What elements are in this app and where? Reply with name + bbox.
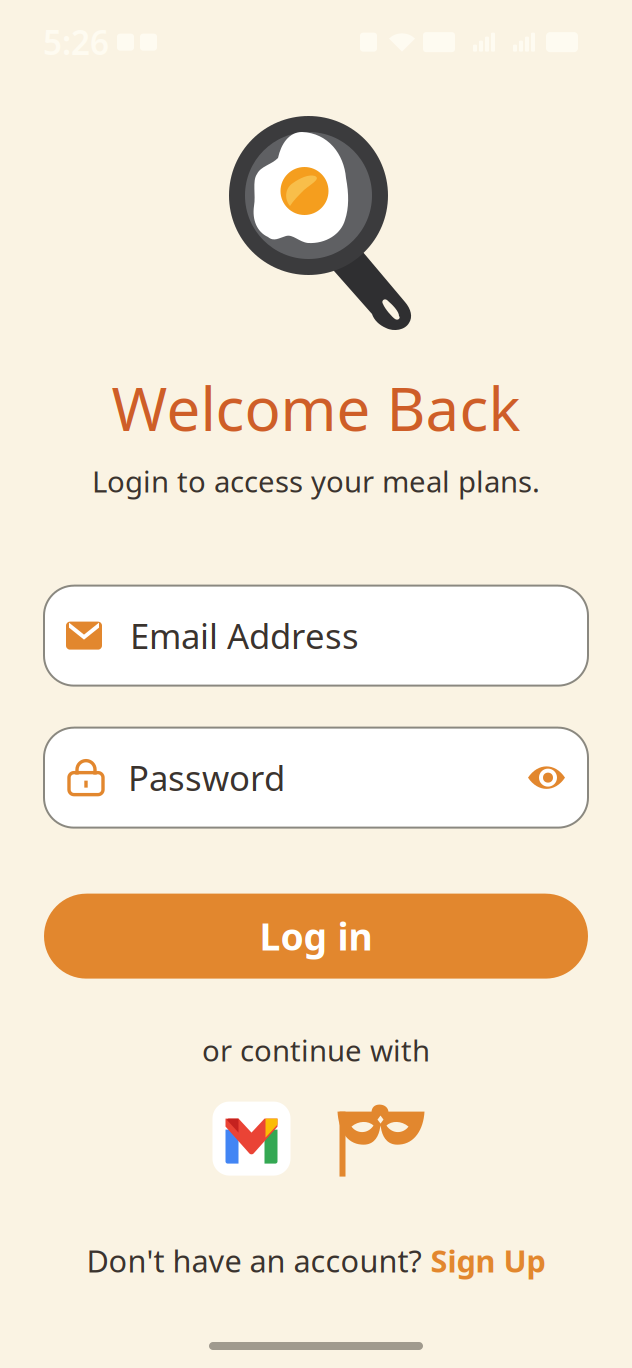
button[interactable]: Password [44, 728, 588, 828]
button[interactable]: Continue anonymously [333, 1101, 425, 1177]
button[interactable]: Log in [44, 894, 588, 979]
staticText: 5:26 [43, 20, 109, 64]
button[interactable]: Email Address [44, 586, 588, 686]
staticText: Don't have an account? [86, 1240, 421, 1281]
staticText: Log in [259, 911, 372, 961]
staticText: Sign Up [430, 1240, 545, 1281]
staticText: Password [128, 755, 285, 801]
staticText: Login to access your meal plans. [92, 462, 540, 501]
button[interactable]: Continue with Gmail [212, 1102, 290, 1176]
staticText: Email Address [130, 613, 359, 659]
staticText: Welcome Back [111, 368, 520, 448]
button[interactable]: Don't have an account? [86, 1240, 545, 1281]
staticText: or continue with [202, 1031, 430, 1070]
